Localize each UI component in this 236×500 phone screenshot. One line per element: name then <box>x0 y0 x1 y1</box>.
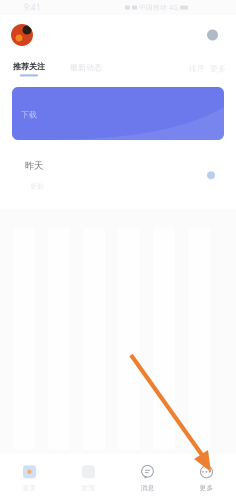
button[interactable]: 排序 <box>189 62 226 73</box>
staticText: 下载 <box>21 110 37 120</box>
button[interactable]: 首页 <box>0 454 59 496</box>
button[interactable]: 推荐关注 <box>13 62 45 76</box>
staticText: 发现 <box>81 484 95 492</box>
staticText: 更多 <box>199 484 213 492</box>
staticText: 4G <box>169 3 178 12</box>
staticText: 排序 <box>189 64 205 73</box>
button[interactable]: 发现 <box>59 454 118 496</box>
button[interactable]: 消息 <box>118 454 177 496</box>
staticText: 更多 <box>210 64 226 73</box>
staticText: 9:41 <box>24 2 41 13</box>
staticText: 更新 <box>30 182 44 191</box>
staticText: 最新动态 <box>70 63 102 72</box>
staticText: 中国移动 <box>139 3 167 12</box>
button[interactable]: Settings <box>207 29 218 40</box>
button[interactable]: 昨天 <box>0 140 236 209</box>
staticText: 消息 <box>140 484 154 492</box>
button[interactable]: Profile <box>11 24 33 46</box>
staticText: 昨天 <box>25 160 43 171</box>
button[interactable]: 更多 <box>177 454 236 496</box>
staticText: 推荐关注 <box>13 62 45 71</box>
button[interactable]: 最新动态 <box>45 62 102 72</box>
staticText: 首页 <box>22 484 36 492</box>
